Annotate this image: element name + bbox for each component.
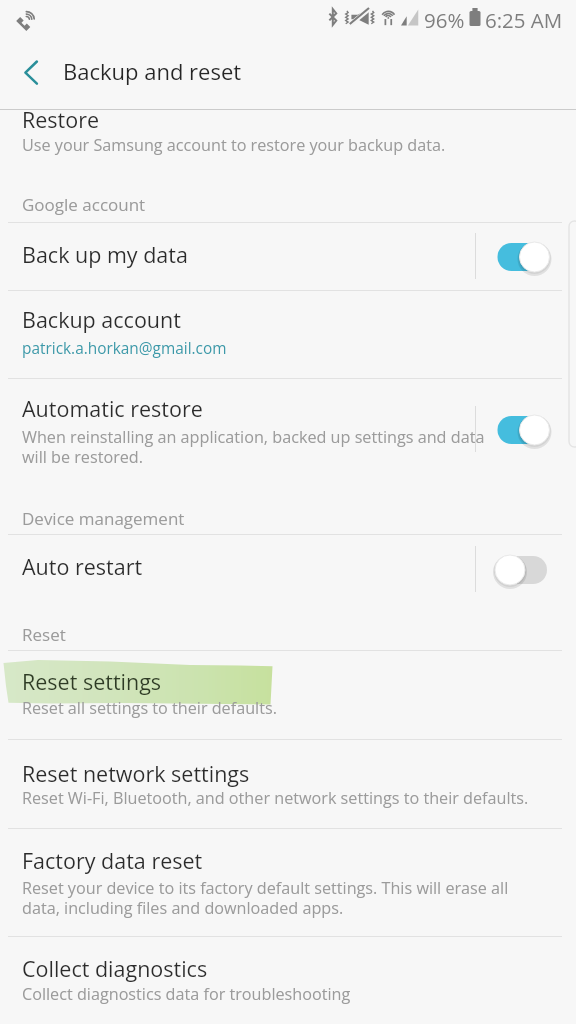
staticText: Backup account <box>22 305 181 334</box>
staticText: Auto restart <box>22 552 143 581</box>
staticText: 96% <box>424 6 465 34</box>
staticText: patrick.a.horkan@gmail.com <box>22 338 227 359</box>
button[interactable]: Automatic restore switch <box>490 404 556 456</box>
button[interactable]: Reset settings <box>0 651 576 739</box>
button[interactable]: Auto restart <box>0 535 576 650</box>
button[interactable]: Restore <box>0 111 576 222</box>
button[interactable]: Navigate up <box>2 47 60 103</box>
button[interactable]: Collect diagnostics <box>0 937 576 1024</box>
staticText: 6:25 AM <box>485 6 563 34</box>
staticText: Google account <box>22 193 146 216</box>
button[interactable]: Backup account <box>0 291 576 378</box>
button[interactable]: Factory data reset <box>0 829 576 936</box>
staticText: Collect diagnostics data for troubleshoo… <box>22 983 351 1005</box>
staticText: Reset all settings to their defaults. <box>22 697 277 719</box>
staticText: Device management <box>22 507 185 530</box>
staticText: Automatic restore <box>22 394 203 423</box>
staticText: Back up my data <box>22 240 188 269</box>
staticText: Reset network settings <box>22 759 250 788</box>
staticText: Restore <box>22 105 100 134</box>
button[interactable]: Back up my data <box>0 223 576 290</box>
staticText: Reset Wi-Fi, Bluetooth, and other networ… <box>22 787 529 809</box>
staticText: Factory data reset <box>22 846 203 875</box>
staticText: When reinstalling an application, backed… <box>22 426 485 468</box>
staticText: Use your Samsung account to restore your… <box>22 134 446 156</box>
staticText: Reset <box>22 623 66 646</box>
button[interactable]: Reset network settings <box>0 740 576 828</box>
button[interactable]: Automatic restore <box>0 379 576 534</box>
button[interactable]: Auto restart switch <box>490 544 556 596</box>
staticText: Reset settings <box>22 667 162 696</box>
staticText: Reset your device to its factory default… <box>22 877 509 919</box>
button[interactable]: Back up my data switch <box>490 231 556 283</box>
staticText: Collect diagnostics <box>22 954 208 983</box>
staticText: Backup and reset <box>63 56 242 86</box>
